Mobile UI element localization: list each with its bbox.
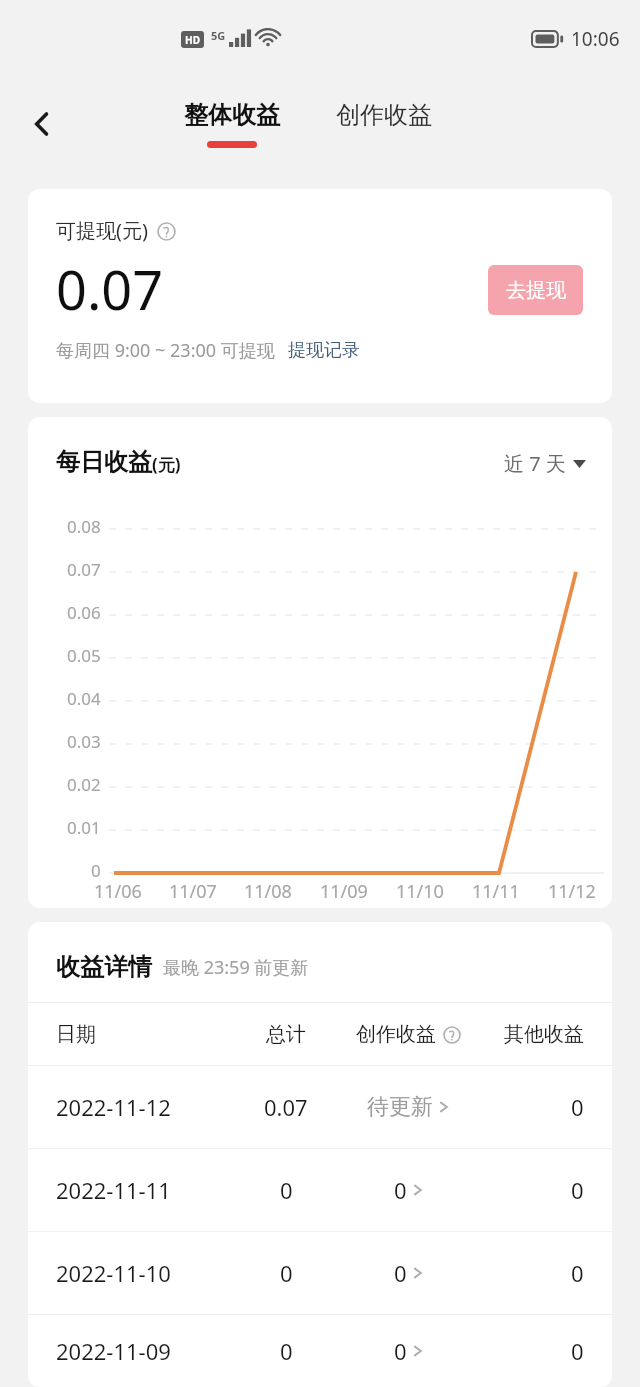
staticText: 0 (394, 1336, 407, 1366)
staticText: HD (185, 33, 200, 47)
staticText: 0.07 (264, 1092, 308, 1122)
staticText: 10:06 (571, 26, 620, 52)
button[interactable]: 2022-11-09 (28, 1315, 612, 1387)
staticText: 0.03 (67, 730, 101, 753)
button[interactable]: 创作收益 (330, 96, 438, 134)
staticText: 0.01 (67, 816, 101, 839)
staticText: 2022-11-12 (56, 1092, 171, 1122)
staticText: 提现记录 (288, 339, 360, 362)
staticText: 0 (280, 1258, 293, 1288)
staticText: 近 7 天 (504, 450, 566, 477)
staticText: 0 (394, 1258, 407, 1288)
staticText: 11/06 (94, 879, 142, 904)
staticText: 0 (91, 859, 101, 882)
button[interactable]: 说明 (154, 219, 178, 243)
staticText: 可提现(元) (56, 217, 148, 244)
staticText: 整体收益 (184, 100, 280, 130)
button[interactable]: 2022-11-11 (28, 1149, 612, 1231)
staticText: 0 (394, 1175, 407, 1205)
staticText: 总计 (266, 1022, 306, 1047)
staticText: 每周四 9:00 ~ 23:00 可提现 (56, 338, 275, 363)
staticText: 0 (571, 1175, 584, 1205)
button[interactable]: 2022-11-12 (28, 1066, 612, 1148)
staticText: 0 (571, 1092, 584, 1122)
staticText: 创作收益 (356, 1022, 436, 1047)
staticText: 待更新 (367, 1093, 433, 1121)
staticText: 0.07 (67, 558, 101, 581)
staticText: 0 (571, 1336, 584, 1366)
staticText: 0 (571, 1258, 584, 1288)
staticText: 0 (280, 1336, 293, 1366)
staticText: 11/09 (320, 879, 368, 904)
staticText: 11/10 (396, 879, 444, 904)
staticText: 0.05 (67, 644, 101, 667)
staticText: 日期 (56, 1022, 96, 1047)
staticText: 2022-11-10 (56, 1258, 171, 1288)
staticText: 0.02 (67, 773, 101, 796)
staticText: 11/07 (169, 879, 217, 904)
staticText: 0 (280, 1175, 293, 1205)
staticText: (元) (152, 453, 181, 476)
staticText: 创作收益 (336, 100, 432, 130)
staticText: 11/08 (244, 879, 292, 904)
staticText: 0.04 (67, 687, 101, 710)
staticText: 其他收益 (504, 1022, 584, 1047)
button[interactable]: 整体收益 (178, 96, 286, 152)
staticText: 11/12 (548, 879, 596, 904)
staticText: 每日收益 (56, 447, 152, 477)
staticText: 收益详情 (56, 952, 152, 982)
button[interactable]: 说明 (441, 1024, 462, 1045)
staticText: 0.07 (56, 252, 164, 326)
staticText: 去提现 (506, 278, 566, 303)
button[interactable]: 去提现 (488, 265, 583, 315)
staticText: 5G (211, 28, 226, 43)
button[interactable]: Back (12, 94, 72, 154)
button[interactable]: 近 7 天 (504, 450, 586, 477)
button[interactable]: 提现记录 (288, 339, 360, 362)
button[interactable]: 2022-11-10 (28, 1232, 612, 1314)
staticText: 0.08 (67, 515, 101, 538)
staticText: 2022-11-09 (56, 1336, 171, 1366)
staticText: 0.06 (67, 601, 101, 624)
staticText: 2022-11-11 (56, 1175, 171, 1205)
staticText: 最晚 23:59 前更新 (163, 955, 309, 980)
staticText: 11/11 (472, 879, 520, 904)
